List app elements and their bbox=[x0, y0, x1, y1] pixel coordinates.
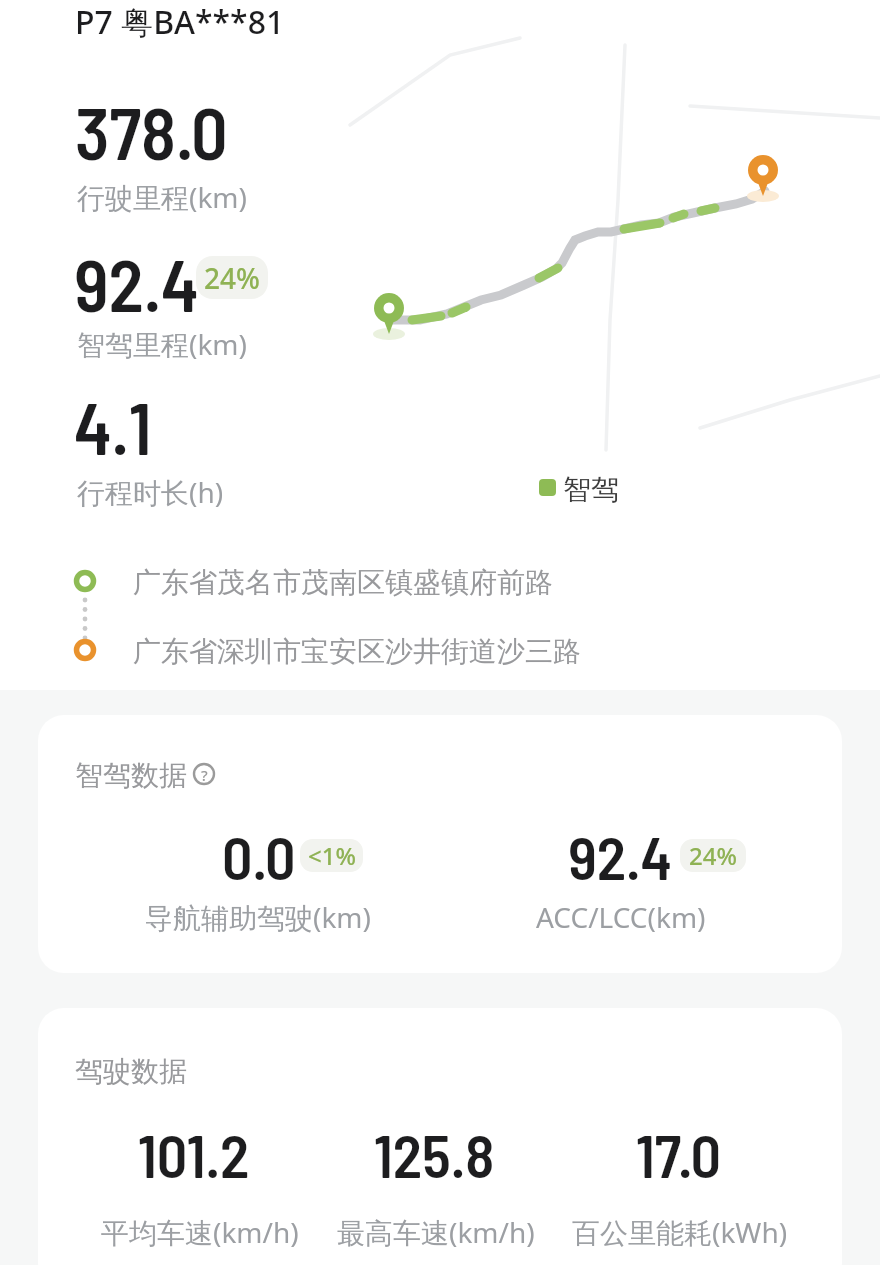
staticText: 平均车速(km/h) bbox=[101, 1213, 299, 1251]
staticText: 24% bbox=[204, 259, 260, 297]
staticText: 92.4 bbox=[568, 820, 672, 892]
button[interactable]: 智驾数据 bbox=[38, 715, 842, 973]
staticText: 导航辅助驾驶(km) bbox=[145, 898, 371, 936]
staticText: 百公里能耗(kWh) bbox=[572, 1213, 788, 1251]
staticText: P7 粤BA***81 bbox=[75, 0, 285, 44]
staticText: 智驾里程(km) bbox=[77, 325, 247, 363]
staticText: 125.8 bbox=[374, 1118, 495, 1190]
staticText: 17.0 bbox=[636, 1118, 722, 1190]
staticText: 24% bbox=[689, 839, 737, 872]
staticText: 4.1 bbox=[74, 383, 152, 469]
staticText: 92.4 bbox=[74, 240, 199, 326]
staticText: ACC/LCC(km) bbox=[536, 898, 706, 936]
button[interactable]: <1% bbox=[300, 839, 363, 872]
staticText: <1% bbox=[308, 839, 356, 872]
staticText: 0.0 bbox=[222, 820, 296, 892]
staticText: 最高车速(km/h) bbox=[337, 1213, 535, 1251]
staticText: 广东省茂名市茂南区镇盛镇府前路 bbox=[133, 565, 553, 600]
staticText: ? bbox=[201, 765, 208, 785]
staticText: 378.0 bbox=[75, 88, 228, 174]
staticText: 智驾数据 bbox=[75, 758, 187, 793]
staticText: 101.2 bbox=[138, 1118, 250, 1190]
staticText: 广东省深圳市宝安区沙井街道沙三路 bbox=[133, 634, 581, 669]
button[interactable]: 24% bbox=[196, 256, 268, 299]
staticText: 智驾 bbox=[563, 472, 619, 507]
button[interactable]: 驾驶数据 bbox=[38, 1008, 842, 1265]
staticText: 行程时长(h) bbox=[77, 473, 224, 511]
staticText: 驾驶数据 bbox=[75, 1054, 187, 1089]
staticText: 行驶里程(km) bbox=[77, 178, 247, 216]
button[interactable]: 24% bbox=[680, 839, 746, 872]
